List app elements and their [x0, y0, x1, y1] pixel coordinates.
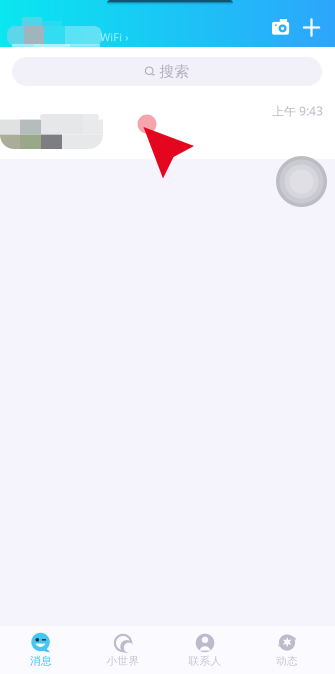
button[interactable]: Camera — [272, 19, 290, 35]
button[interactable]: Add — [302, 18, 321, 37]
button[interactable]: Assistive Touch — [275, 155, 328, 208]
staticText: WiFi › — [100, 30, 128, 44]
staticText: 动态 — [276, 654, 298, 667]
staticText: 小世界 — [106, 654, 139, 667]
button[interactable]: 联系人 — [164, 626, 246, 674]
staticText: 消息 — [30, 654, 52, 667]
button[interactable]: 动态 — [246, 626, 328, 674]
button[interactable]: 上午 9:43 — [0, 86, 335, 159]
button[interactable]: 小世界 — [82, 626, 164, 674]
button[interactable]: 搜索 — [12, 57, 322, 86]
staticText: 联系人 — [188, 654, 221, 667]
button[interactable]: 消息 — [0, 626, 82, 674]
staticText: 搜索 — [159, 62, 189, 80]
staticText: 上午 9:43 — [272, 103, 323, 119]
